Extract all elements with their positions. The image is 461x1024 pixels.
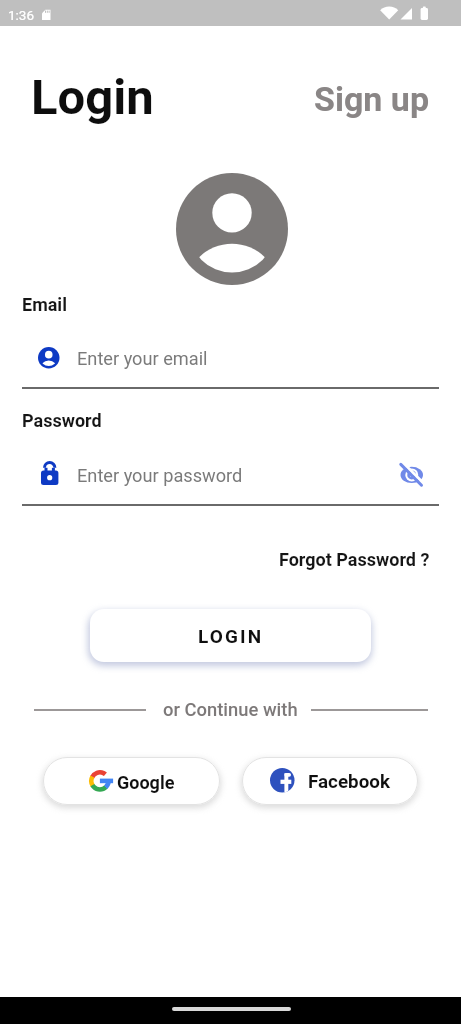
staticText: Login <box>31 69 154 126</box>
button[interactable]: Sign up <box>314 79 430 119</box>
staticText: Email <box>22 294 67 315</box>
button[interactable]: Enter your email <box>22 340 439 389</box>
staticText: Enter your email <box>77 348 208 369</box>
staticText: Facebook <box>308 771 390 793</box>
staticText: LOGIN <box>198 625 264 647</box>
button[interactable]: Facebook <box>242 757 418 805</box>
button[interactable] <box>399 462 424 487</box>
button[interactable]: Enter your password <box>22 456 439 506</box>
staticText: Enter your password <box>77 465 243 486</box>
button[interactable]: LOGIN <box>90 609 371 662</box>
staticText: Google <box>117 772 175 793</box>
staticText: 1:36 <box>8 7 35 23</box>
staticText: or Continue with <box>163 699 298 721</box>
button[interactable]: Forgot Password ? <box>279 549 430 570</box>
button[interactable]: Google <box>43 757 220 805</box>
staticText: Password <box>22 410 102 431</box>
